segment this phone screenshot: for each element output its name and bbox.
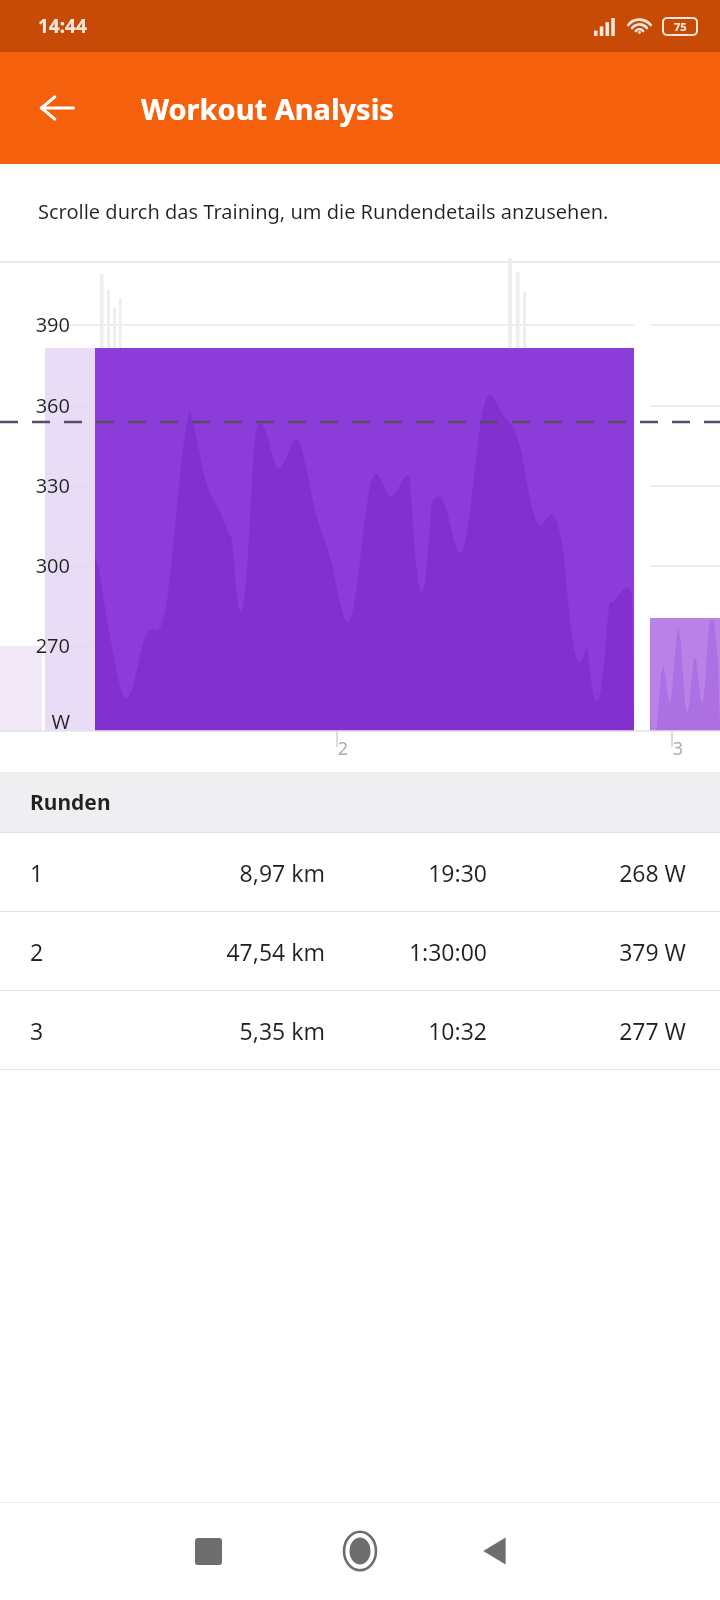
staticText: 75 xyxy=(674,19,687,34)
button[interactable]: Back xyxy=(20,71,94,145)
staticText: 1:30:00 xyxy=(325,936,487,967)
staticText: 47,54 km xyxy=(0,936,325,967)
button[interactable]: 1 xyxy=(0,833,720,912)
staticText: W xyxy=(0,708,70,735)
staticText: 3 xyxy=(30,1015,44,1046)
button[interactable]: Home xyxy=(322,1513,398,1589)
button[interactable]: 3 xyxy=(0,991,720,1070)
staticText: 270 xyxy=(0,632,70,659)
staticText: 3 xyxy=(0,736,683,761)
staticText: 19:30 xyxy=(325,857,487,888)
button[interactable]: Back xyxy=(458,1513,534,1589)
staticText: 5,35 km xyxy=(0,1015,325,1046)
staticText: Workout Analysis xyxy=(141,89,394,128)
button[interactable]: 2 xyxy=(0,912,720,991)
staticText: 2 xyxy=(0,736,348,761)
staticText: 1 xyxy=(30,857,44,888)
staticText: 330 xyxy=(0,472,70,499)
staticText: 14:44 xyxy=(38,13,87,39)
staticText: 390 xyxy=(0,311,70,338)
staticText: 10:32 xyxy=(325,1015,487,1046)
staticText: 379 W xyxy=(487,936,686,967)
staticText: 300 xyxy=(0,552,70,579)
staticText: 360 xyxy=(0,392,70,419)
staticText: 2 xyxy=(30,936,44,967)
staticText: Scrolle durch das Training, um die Runde… xyxy=(38,198,609,225)
staticText: 277 W xyxy=(487,1015,686,1046)
staticText: 268 W xyxy=(487,857,686,888)
staticText: Runden xyxy=(30,788,111,817)
staticText: 8,97 km xyxy=(0,857,325,888)
button[interactable]: Recent apps xyxy=(170,1513,246,1589)
